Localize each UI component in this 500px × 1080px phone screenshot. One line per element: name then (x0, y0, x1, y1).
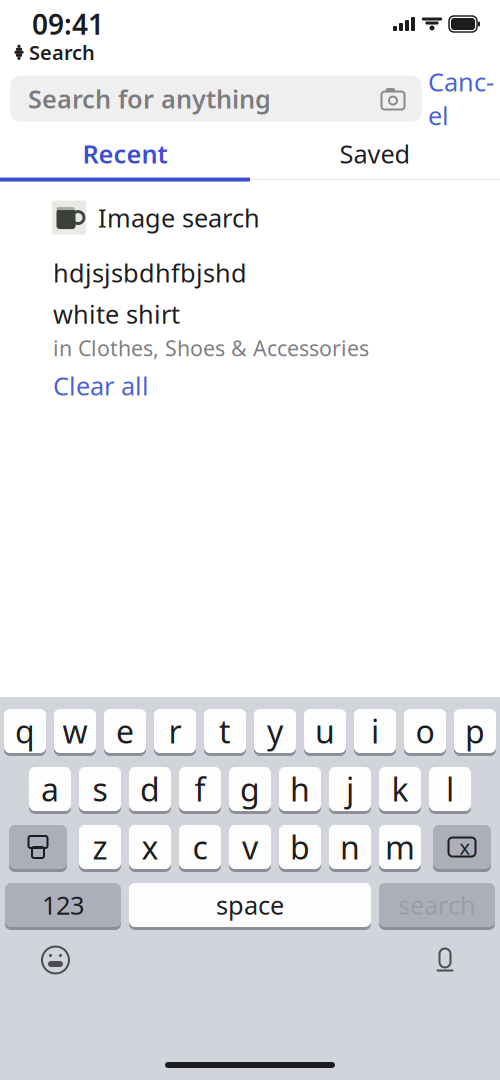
staticText: l (446, 768, 454, 810)
button[interactable]: i (354, 709, 396, 756)
staticText: hdjsjsbdhfbjshd (53, 256, 247, 289)
staticText: s (92, 768, 107, 810)
button[interactable]: g (229, 767, 271, 814)
button[interactable]: space (129, 883, 371, 930)
button[interactable]: k (379, 767, 421, 814)
button[interactable]: x (129, 825, 171, 872)
button[interactable]: p (454, 709, 496, 756)
staticText: g (240, 768, 260, 810)
staticText: h (290, 768, 310, 810)
button[interactable]: q (4, 709, 46, 756)
staticText: b (290, 826, 310, 868)
button[interactable]: c (179, 825, 221, 872)
button[interactable]: o (404, 709, 446, 756)
button[interactable]: l (429, 767, 471, 814)
staticText: a (41, 768, 59, 810)
staticText: search (398, 888, 476, 922)
staticText: r (168, 710, 181, 752)
staticText: z (92, 826, 107, 868)
button[interactable]: Search for anything (10, 76, 422, 122)
button[interactable]: e (104, 709, 146, 756)
button[interactable]: y (254, 709, 296, 756)
button[interactable]: Recent (0, 130, 250, 178)
button[interactable]: Image search (0, 190, 500, 246)
staticText: Recent (82, 137, 167, 170)
staticText: e (116, 710, 134, 752)
staticText: Clear all (53, 369, 149, 402)
button[interactable]: w (54, 709, 96, 756)
button[interactable]: a (29, 767, 71, 814)
button[interactable]: n (329, 825, 371, 872)
button[interactable]: search (379, 883, 495, 930)
button[interactable]: Delete (433, 825, 491, 872)
staticText: x (141, 826, 158, 868)
button[interactable]: z (79, 825, 121, 872)
button[interactable]: white shirt (0, 300, 500, 360)
staticText: Image search (98, 201, 260, 234)
staticText: j (346, 768, 354, 810)
button[interactable]: m (379, 825, 421, 872)
button[interactable]: Clear all (0, 360, 500, 412)
staticText: m (385, 826, 415, 868)
staticText: u (315, 710, 335, 752)
button[interactable]: Emoji (40, 944, 71, 975)
staticText: t (219, 710, 231, 752)
button[interactable]: Cancel (422, 76, 500, 122)
button[interactable]: s (79, 767, 121, 814)
button[interactable]: u (304, 709, 346, 756)
button[interactable]: Saved (250, 130, 500, 178)
button[interactable]: t (204, 709, 246, 756)
staticText: q (15, 710, 35, 752)
staticText: space (216, 888, 284, 922)
staticText: p (465, 710, 485, 752)
button[interactable]: j (329, 767, 371, 814)
staticText: Saved (339, 137, 410, 170)
staticText: v (242, 826, 258, 868)
button[interactable]: Dictation (432, 945, 458, 975)
staticText: Search (29, 39, 95, 66)
staticText: d (140, 768, 160, 810)
staticText: f (194, 768, 205, 810)
button[interactable]: Search (0, 38, 95, 66)
staticText: 09:41 (32, 5, 104, 43)
staticText: Cancel (428, 65, 494, 132)
staticText: n (340, 826, 360, 868)
button[interactable]: hdjsjsbdhfbjshd (0, 246, 500, 300)
staticText: x (459, 834, 470, 860)
staticText: 123 (42, 888, 84, 922)
staticText: white shirt (53, 297, 180, 331)
staticText: Search for anything (28, 82, 271, 115)
button[interactable]: v (229, 825, 271, 872)
button[interactable]: b (279, 825, 321, 872)
button[interactable]: d (129, 767, 171, 814)
button[interactable]: r (154, 709, 196, 756)
staticText: k (391, 768, 408, 810)
staticText: y (267, 710, 283, 752)
staticText: i (371, 710, 379, 752)
staticText: in Clothes, Shoes & Accessories (53, 334, 369, 362)
staticText: o (415, 710, 434, 752)
button[interactable]: f (179, 767, 221, 814)
button[interactable]: 123 (5, 883, 121, 930)
staticText: w (62, 710, 87, 752)
button[interactable]: Shift (9, 825, 67, 872)
button[interactable]: h (279, 767, 321, 814)
staticText: c (192, 826, 207, 868)
